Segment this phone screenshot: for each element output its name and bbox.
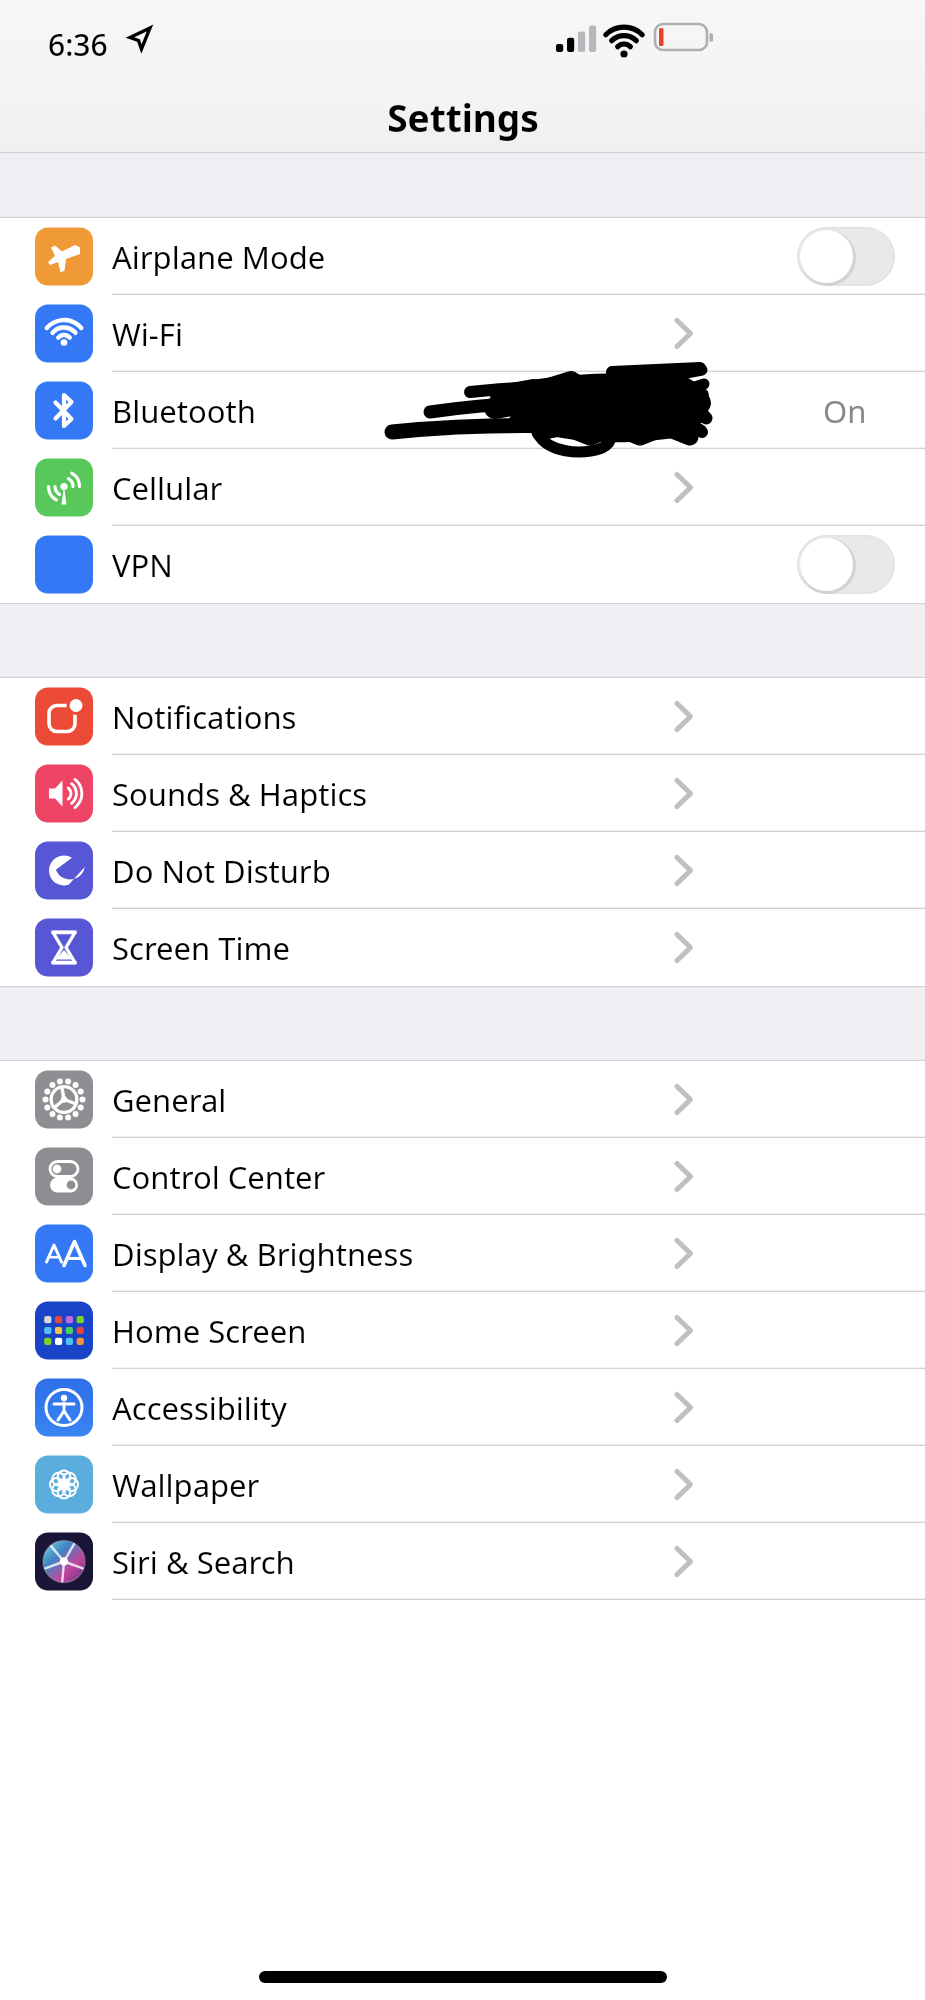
- button[interactable]: Display & Brightness: [0, 1215, 925, 1292]
- button[interactable]: Home Screen: [0, 1292, 925, 1369]
- button[interactable]: Accessibility: [0, 1369, 925, 1446]
- staticText: Bluetooth: [112, 390, 256, 432]
- button[interactable]: General: [0, 1061, 925, 1138]
- staticText: Wallpaper: [112, 1464, 260, 1506]
- button[interactable]: Bluetooth: [0, 372, 925, 449]
- staticText: Airplane Mode: [112, 236, 326, 278]
- staticText: 6:36: [48, 24, 108, 65]
- staticText: Screen Time: [112, 927, 290, 969]
- staticText: Accessibility: [112, 1387, 287, 1429]
- staticText: Do Not Disturb: [112, 850, 331, 892]
- button[interactable]: Wallpaper: [0, 1446, 925, 1523]
- button[interactable]: Airplane Mode: [0, 218, 925, 295]
- staticText: Siri & Search: [112, 1541, 295, 1583]
- button[interactable]: Siri & Search: [0, 1523, 925, 1600]
- staticText: VPN: [112, 544, 173, 586]
- staticText: General: [112, 1079, 227, 1121]
- button[interactable]: Screen Time: [0, 909, 925, 986]
- staticText: Control Center: [112, 1156, 326, 1198]
- staticText: Wi-Fi: [112, 313, 183, 355]
- staticText: Home Screen: [112, 1310, 307, 1352]
- staticText: Sounds & Haptics: [112, 773, 368, 815]
- button[interactable]: Notifications: [0, 678, 925, 755]
- staticText: On: [823, 390, 867, 432]
- button[interactable]: Control Center: [0, 1138, 925, 1215]
- staticText: Display & Brightness: [112, 1233, 414, 1275]
- button[interactable]: Airplane Mode toggle, off: [797, 227, 895, 286]
- staticText: Settings: [387, 92, 539, 142]
- button[interactable]: Wi-Fi: [0, 295, 925, 372]
- button[interactable]: Do Not Disturb: [0, 832, 925, 909]
- button[interactable]: Sounds & Haptics: [0, 755, 925, 832]
- button[interactable]: VPN: [0, 526, 925, 603]
- button[interactable]: VPN toggle, off: [797, 535, 895, 594]
- button[interactable]: Cellular: [0, 449, 925, 526]
- staticText: Cellular: [112, 467, 223, 509]
- staticText: Notifications: [112, 696, 297, 738]
